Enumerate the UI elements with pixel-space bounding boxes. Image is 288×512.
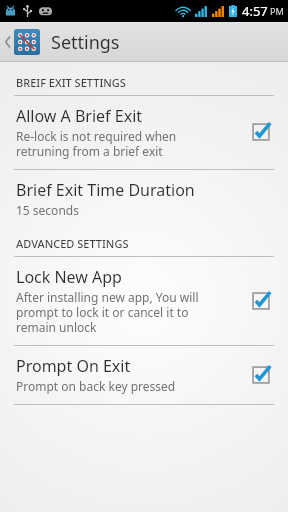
staticText: ADVANCED SETTINGS: [16, 236, 129, 251]
staticText: PM: [270, 5, 284, 17]
button[interactable]: Brief Exit Time Duration: [0, 170, 288, 228]
staticText: 15 seconds: [16, 202, 79, 218]
staticText: BREIF EXIT SETTINGS: [16, 75, 126, 90]
button[interactable]: Checked: [248, 288, 274, 314]
button[interactable]: Checked: [248, 362, 274, 388]
button[interactable]: Lock New App: [0, 257, 288, 345]
staticText: Prompt On Exit: [16, 355, 131, 377]
staticText: Brief Exit Time Duration: [16, 179, 195, 201]
staticText: 4:57: [242, 2, 268, 20]
staticText: Lock New App: [16, 266, 122, 288]
staticText: After installing new app, You will promp…: [16, 289, 199, 335]
staticText: Re-lock is not required when retruning f…: [16, 128, 177, 159]
button[interactable]: Prompt On Exit: [0, 346, 288, 404]
staticText: Settings: [51, 30, 120, 55]
staticText: Prompt on back key pressed: [16, 378, 176, 394]
staticText: Allow A Brief Exit: [16, 105, 143, 127]
button[interactable]: Allow A Brief Exit: [0, 96, 288, 169]
button[interactable]: Checked: [248, 119, 274, 145]
button[interactable]: Navigate up, Settings: [0, 29, 128, 55]
